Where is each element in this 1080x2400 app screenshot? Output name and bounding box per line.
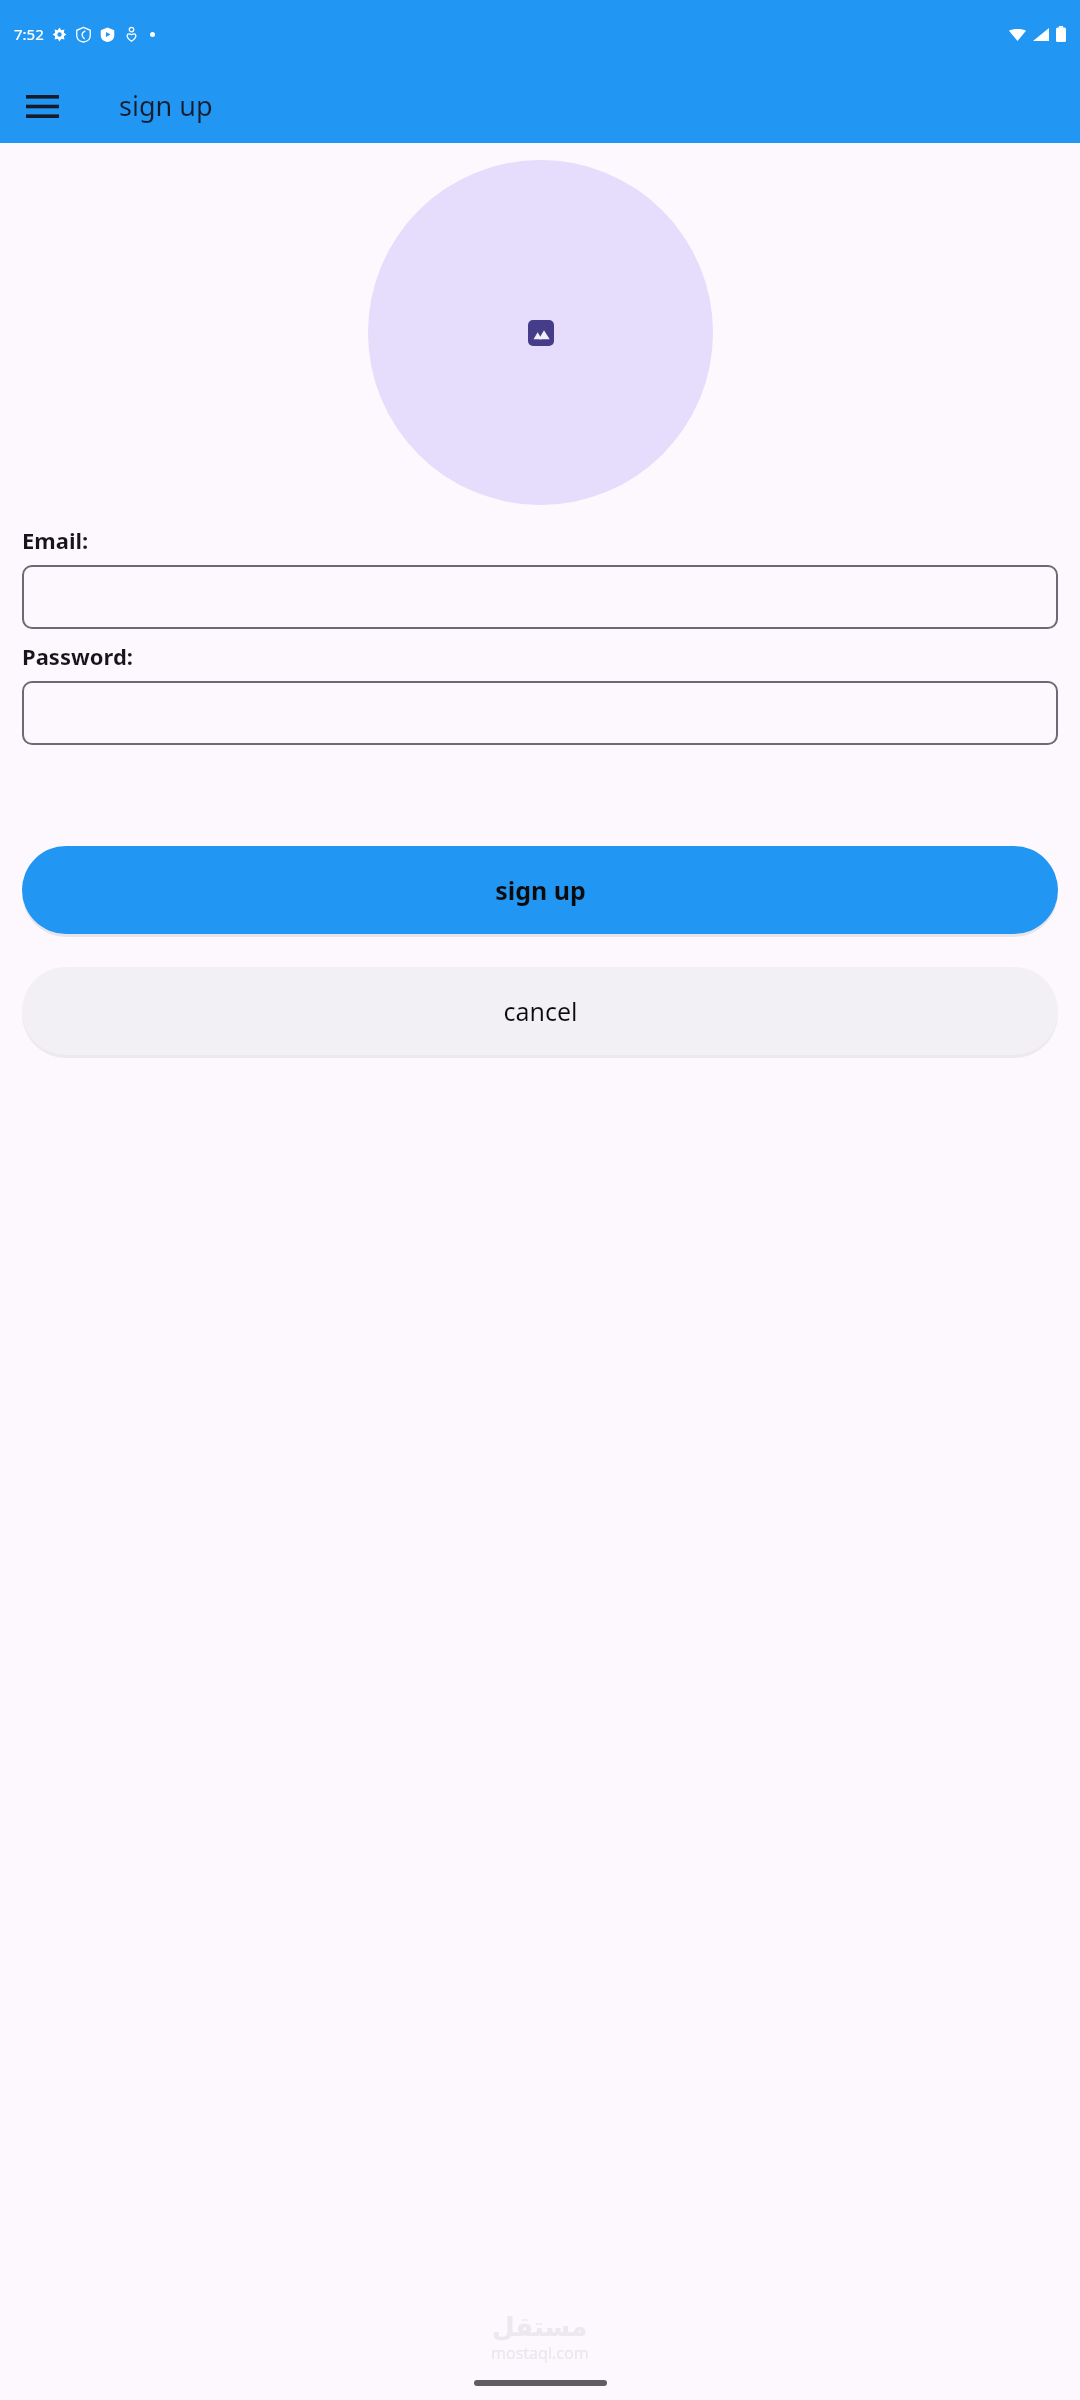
staticText: Email: — [22, 525, 89, 555]
staticText: مستقل — [492, 2312, 588, 2342]
staticText: 7:52 — [14, 24, 44, 44]
button[interactable]: Email input field — [22, 565, 1058, 629]
button[interactable]: sign up — [22, 846, 1058, 934]
staticText: sign up — [495, 873, 586, 907]
button[interactable]: Open navigation menu — [18, 82, 66, 130]
button[interactable]: Choose profile picture — [368, 160, 713, 505]
staticText: sign up — [119, 87, 213, 124]
staticText: Password: — [22, 641, 133, 671]
staticText: mostaql.com — [491, 2342, 589, 2364]
button[interactable]: Password input field — [22, 681, 1058, 745]
button[interactable]: cancel — [22, 967, 1058, 1055]
staticText: cancel — [503, 994, 578, 1028]
